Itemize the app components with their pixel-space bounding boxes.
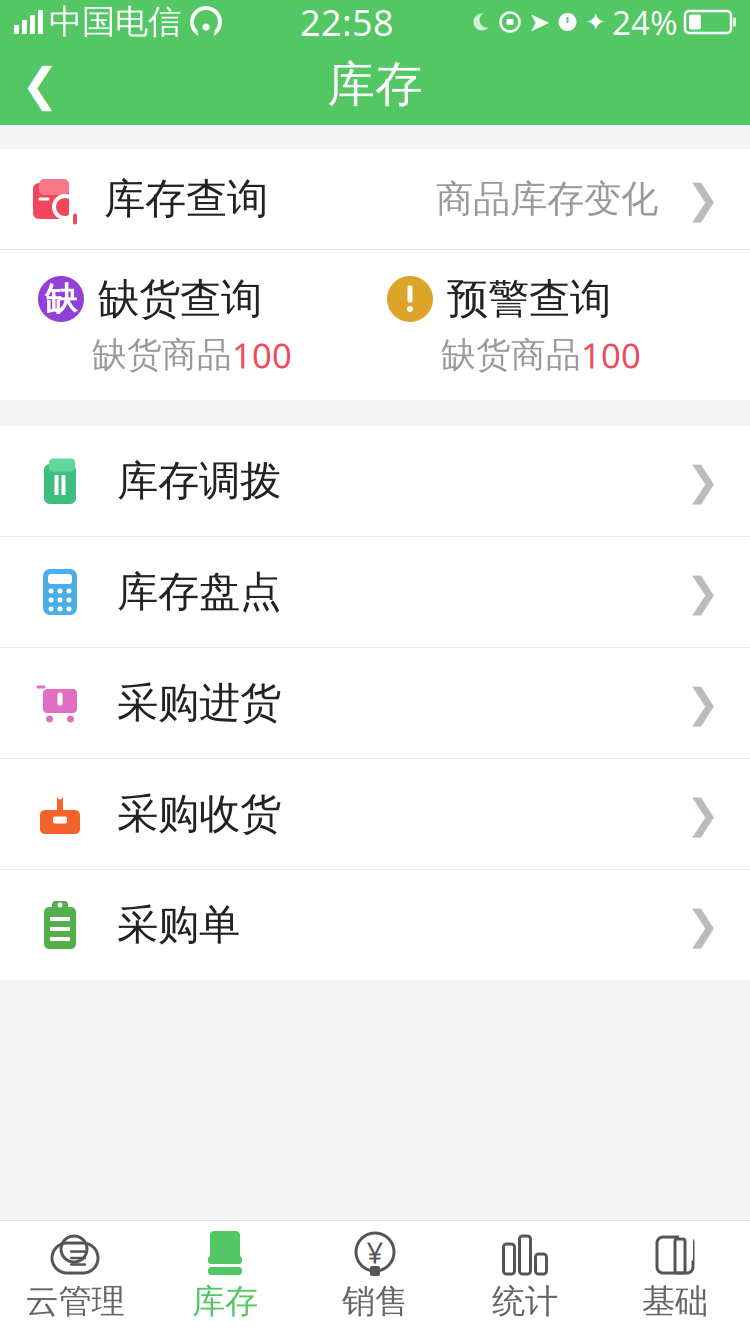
staticText: ❯ <box>686 458 720 504</box>
staticText: ❮ <box>21 59 59 110</box>
staticText: 云管理 <box>25 1281 124 1322</box>
staticText: 销售 <box>342 1281 408 1322</box>
staticText: ¥ <box>366 1233 383 1272</box>
staticText: 24% <box>612 0 678 44</box>
button[interactable]: 云管理 <box>0 1222 150 1332</box>
button[interactable]: 采购进货 <box>0 648 750 758</box>
button[interactable]: 基础 <box>600 1222 750 1332</box>
button[interactable]: 缺 <box>34 272 365 378</box>
staticText: 缺货查询 <box>98 274 262 324</box>
staticText: 缺 <box>45 279 77 319</box>
staticText: ➤ <box>528 7 550 37</box>
staticText: 中国电信 <box>49 1 181 42</box>
staticText: 缺货商品 <box>441 334 581 376</box>
staticText: 缺货商品 <box>92 334 232 376</box>
button[interactable]: 库存查询 <box>0 149 750 249</box>
staticText: 基础 <box>642 1281 708 1322</box>
staticText: 库存 <box>192 1281 258 1322</box>
button[interactable]: ¥ <box>300 1222 450 1332</box>
staticText: 22:58 <box>300 0 394 46</box>
staticText: 预警查询 <box>447 274 611 324</box>
staticText: 库存盘点 <box>117 567 281 617</box>
staticText: 100 <box>581 332 641 378</box>
staticText: 采购进货 <box>117 678 281 728</box>
button[interactable]: 返回 <box>0 44 80 124</box>
staticText: ✦ <box>585 8 606 36</box>
staticText: 100 <box>232 332 292 378</box>
button[interactable]: 库存调拨 <box>0 426 750 536</box>
staticText: ❯ <box>686 569 720 615</box>
staticText: ❯ <box>686 680 720 726</box>
button[interactable]: 库存盘点 <box>0 537 750 647</box>
staticText: ❯ <box>686 902 720 948</box>
staticText: 采购收货 <box>117 789 281 839</box>
button[interactable]: 预警查询 <box>383 272 730 378</box>
staticText: 商品库存变化 <box>436 176 658 222</box>
staticText: 统计 <box>492 1281 558 1322</box>
staticText: ❯ <box>686 791 720 837</box>
button[interactable]: 库存 <box>150 1222 300 1332</box>
staticText: ❯ <box>686 176 720 222</box>
button[interactable]: 采购收货 <box>0 759 750 869</box>
staticText: 采购单 <box>117 900 240 950</box>
staticText: 库存 <box>327 55 423 114</box>
button[interactable]: 统计 <box>450 1222 600 1332</box>
button[interactable]: 采购单 <box>0 870 750 980</box>
staticText: 库存调拨 <box>117 456 281 506</box>
staticText: 库存查询 <box>104 174 268 224</box>
